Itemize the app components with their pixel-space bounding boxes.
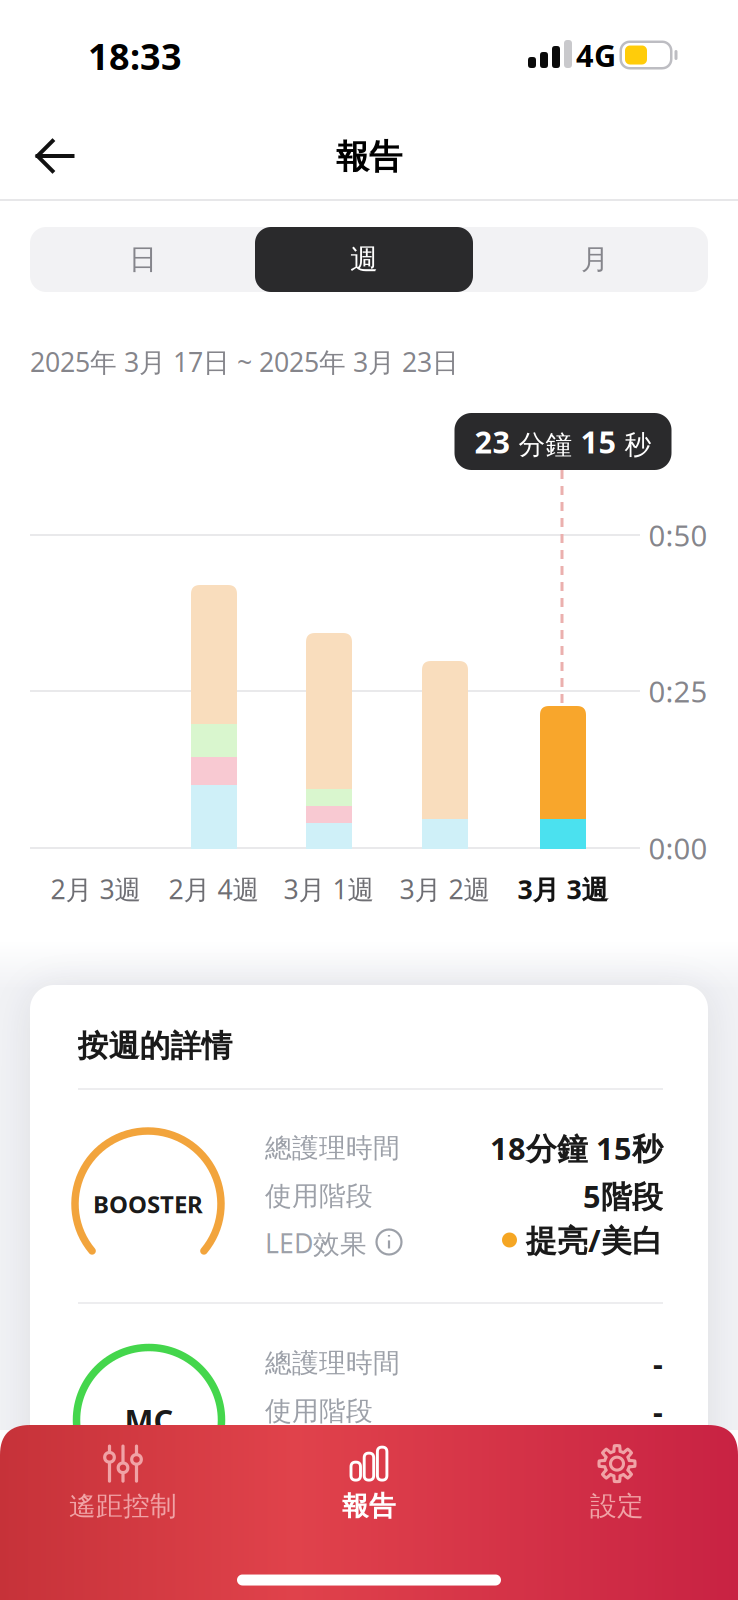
staticText: 3月 2週 (399, 871, 490, 907)
staticText: 3月 3週 (517, 871, 608, 907)
staticText: 0:25 (648, 671, 707, 710)
button[interactable]: Back (19, 125, 88, 187)
staticText: 報告 (342, 1490, 396, 1522)
staticText: 月 (581, 242, 609, 277)
staticText: 23 分鐘 15 秒 (474, 421, 651, 462)
button[interactable]: 日 (30, 227, 256, 292)
staticText: 使用階段 (265, 1180, 373, 1212)
staticText: 3月 1週 (283, 871, 374, 907)
staticText: 4G (576, 35, 616, 75)
button[interactable]: 設定 (502, 1428, 732, 1538)
staticText: 2月 3週 (50, 871, 141, 907)
staticText: LED效果 (265, 1225, 367, 1261)
staticText: 總護理時間 (265, 1132, 400, 1164)
staticText: 日 (129, 242, 157, 277)
staticText: 5階段 (583, 1176, 663, 1216)
staticText: 遙距控制 (69, 1490, 177, 1522)
staticText: 2月 4週 (168, 871, 259, 907)
staticText: - (653, 1391, 663, 1431)
button[interactable]: 月 (482, 227, 708, 292)
button[interactable]: 報告 (254, 1428, 484, 1538)
button[interactable]: 遙距控制 (8, 1428, 238, 1538)
staticText: 18:33 (88, 32, 182, 80)
staticText: - (653, 1343, 663, 1383)
staticText: 0:00 (648, 828, 707, 867)
staticText: 週 (350, 242, 378, 277)
staticText: MC (124, 1400, 173, 1440)
staticText: 總護理時間 (265, 1347, 400, 1379)
staticText: BOOSTER (93, 1188, 203, 1220)
button[interactable]: Info (375, 1228, 402, 1255)
staticText: 設定 (590, 1490, 644, 1522)
staticText: 18分鐘 15秒 (490, 1128, 663, 1168)
staticText: 報告 (336, 136, 402, 177)
staticText: 按週的詳情 (77, 1027, 232, 1065)
staticText: 0:50 (648, 515, 707, 554)
button[interactable]: 週 (255, 227, 473, 292)
staticText: 2025年 3月 17日 ~ 2025年 3月 23日 (30, 344, 459, 379)
staticText: 使用階段 (265, 1395, 373, 1427)
staticText: 提亮/美白 (526, 1220, 663, 1260)
